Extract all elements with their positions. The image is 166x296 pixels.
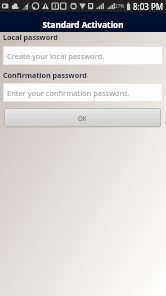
staticText: Standard Activation bbox=[42, 19, 124, 30]
staticText: Create your local password. bbox=[7, 51, 105, 61]
staticText: Confirmation password bbox=[3, 70, 87, 80]
staticText: Enter your confirmation password. bbox=[7, 88, 130, 98]
staticText: Local password bbox=[3, 32, 58, 42]
staticText: 8:03 PM bbox=[133, 1, 164, 12]
staticText: OK bbox=[78, 114, 87, 122]
button[interactable]: Create your local password. bbox=[3, 46, 163, 65]
button[interactable]: Enter your confirmation password. bbox=[3, 83, 163, 102]
button[interactable]: OK bbox=[4, 108, 161, 127]
staticText: 27% bbox=[115, 3, 125, 9]
